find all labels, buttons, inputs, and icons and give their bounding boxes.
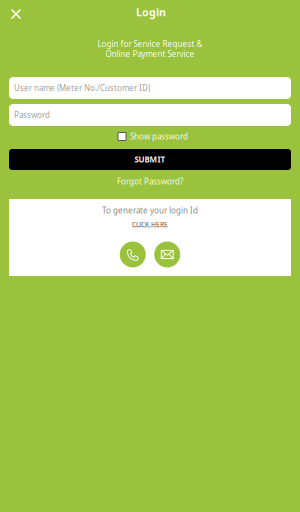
staticText: To generate your login Id [102,205,198,216]
button[interactable]: Forgot Password? [117,176,183,187]
staticText: Online Payment Service [105,49,194,59]
button[interactable]: SUBMIT [9,149,291,170]
staticText: CLICK HERE [132,220,168,228]
staticText: User name (Meter No./Customer ID) [14,83,150,93]
button[interactable]: Email [154,241,180,267]
button[interactable]: CLICK HERE [132,220,168,228]
staticText: Password [14,110,50,120]
staticText: Show password [130,131,188,142]
staticText: Login for Service Request & [97,39,202,49]
staticText: SUBMIT [134,154,165,165]
staticText: Login [136,5,166,19]
button[interactable]: Call [120,241,146,267]
button[interactable]: Close [9,0,23,26]
staticText: Forgot Password? [117,176,183,187]
